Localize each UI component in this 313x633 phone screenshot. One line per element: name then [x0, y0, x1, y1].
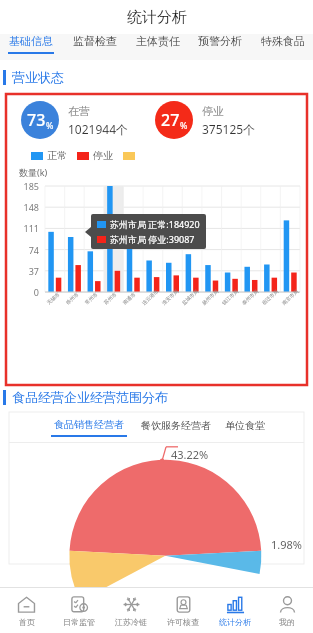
button[interactable]: 统计分析	[209, 588, 261, 633]
staticText: 扬州市局	[201, 288, 219, 306]
staticText: 统计分析	[127, 8, 187, 27]
staticText: 江苏冷链	[115, 617, 147, 627]
staticText: 73	[27, 109, 46, 131]
button[interactable]: 特殊食品	[258, 34, 308, 52]
staticText: 111	[7, 222, 39, 234]
staticText: 监督检查	[73, 34, 117, 48]
staticText: 食品销售经营者	[54, 418, 124, 431]
staticText: 预警分析	[198, 34, 242, 48]
staticText: 无锡市局	[45, 288, 63, 306]
staticText: 在营	[68, 104, 90, 118]
staticText: 正常	[47, 149, 67, 162]
staticText: 南京市局	[281, 288, 299, 306]
button[interactable]: 监督检查	[70, 34, 120, 52]
button[interactable]: 食品销售经营者	[51, 418, 127, 437]
staticText: 南通市局	[121, 288, 139, 306]
staticText: 常州市局	[83, 288, 101, 306]
staticText: 0	[7, 286, 39, 298]
staticText: 1.98%	[271, 537, 302, 552]
staticText: 日常监管	[63, 617, 95, 627]
staticText: 74	[7, 244, 39, 256]
staticText: 停业	[202, 104, 224, 118]
button[interactable]: 许可核查	[157, 588, 209, 633]
button[interactable]: 我的	[261, 588, 313, 633]
staticText: %	[180, 119, 188, 131]
staticText: 27	[161, 109, 180, 131]
staticText: 统计分析	[219, 617, 251, 627]
staticText: 苏州市局 停业:39087	[110, 233, 195, 245]
staticText: 苏州市局 正常:184920	[110, 218, 200, 230]
button[interactable]: 日常监管	[53, 588, 105, 633]
staticText: 宿迁市局	[261, 288, 279, 306]
staticText: 185	[7, 180, 39, 192]
staticText: 镇江市局	[221, 288, 239, 306]
staticText: 连云港市局	[141, 288, 159, 306]
staticText: 首页	[19, 617, 35, 627]
staticText: 餐饮服务经营者	[141, 419, 211, 432]
staticText: 单位食堂	[225, 419, 265, 432]
staticText: 数量(k)	[19, 166, 48, 178]
staticText: 特殊食品	[261, 34, 305, 48]
staticText: 375125个	[202, 121, 256, 137]
button[interactable]: 江苏冷链	[105, 588, 157, 633]
staticText: 淮安市局	[161, 288, 179, 306]
staticText: 148	[7, 201, 39, 213]
button[interactable]: 首页	[0, 588, 53, 633]
staticText: 43.22%	[171, 447, 209, 462]
staticText: 盐城市局	[181, 288, 199, 306]
button[interactable]: 餐饮服务经营者	[141, 419, 211, 436]
staticText: 食品经营企业经营范围分布	[12, 389, 168, 405]
staticText: 许可核查	[167, 617, 199, 627]
staticText: 基础信息	[9, 34, 53, 48]
staticText: 营业状态	[12, 69, 64, 85]
staticText: 我的	[279, 617, 295, 627]
staticText: 泰州市局	[241, 288, 259, 306]
button[interactable]: 单位食堂	[225, 419, 265, 436]
staticText: 1021944个	[68, 121, 129, 137]
staticText: 37	[7, 265, 39, 277]
staticText: %	[46, 119, 54, 131]
staticText: 主体责任	[136, 34, 180, 48]
staticText: 苏州市局	[102, 288, 120, 306]
staticText: 徐州市局	[64, 288, 82, 306]
staticText: 停业	[93, 149, 113, 162]
button[interactable]: 基础信息	[5, 34, 57, 54]
button[interactable]: 预警分析	[195, 34, 245, 52]
button[interactable]: 主体责任	[133, 34, 183, 52]
